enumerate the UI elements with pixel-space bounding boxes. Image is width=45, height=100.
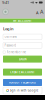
staticText: Sign in with Google (10, 89, 39, 92)
button[interactable]: LOGIN (3, 56, 42, 63)
staticText: MY ACCOUNT (13, 19, 32, 22)
button[interactable]: CREATE ACCOUNT (3, 69, 42, 76)
button[interactable]: Text size (34, 5, 45, 19)
staticText: LOGIN (18, 57, 26, 61)
staticText: Username (4, 35, 17, 38)
staticText: Remember me (6, 50, 26, 54)
button[interactable]: Remember me (3, 51, 42, 54)
staticText: CREATE ACCOUNT (10, 70, 35, 74)
staticText: Password (4, 44, 16, 47)
staticText: FORGOT PASSWORD (9, 81, 36, 84)
button[interactable]: FORGOT PASSWORD (3, 79, 42, 86)
staticText: 9:41 (2, 0, 9, 5)
staticText: A (36, 10, 39, 15)
staticText: A (40, 8, 43, 15)
button[interactable]: Site logo (0, 5, 11, 19)
button[interactable]: Sign in with Google (3, 87, 42, 94)
staticText: Login (3, 26, 14, 31)
